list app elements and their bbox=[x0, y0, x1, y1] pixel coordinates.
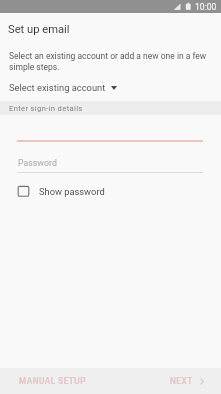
staticText: Show password bbox=[39, 186, 105, 197]
staticText: Password bbox=[18, 158, 57, 168]
button[interactable]: Password bbox=[17, 158, 203, 174]
button[interactable] bbox=[17, 124, 203, 141]
other: Signal strength bbox=[173, 3, 181, 11]
staticText: Select existing account bbox=[9, 82, 106, 93]
button[interactable]: Show password bbox=[14, 183, 105, 200]
other: Battery bbox=[185, 2, 192, 11]
staticText: MANUAL SETUP bbox=[19, 376, 86, 386]
staticText: Set up email bbox=[8, 23, 70, 36]
staticText: Select an existing account or add a new … bbox=[9, 51, 212, 72]
staticText: 10:00 bbox=[195, 2, 217, 12]
button[interactable]: Select existing account bbox=[0, 80, 221, 95]
button[interactable]: NEXT bbox=[158, 369, 221, 393]
button[interactable]: MANUAL SETUP bbox=[0, 369, 105, 393]
staticText: Enter sign-in details bbox=[9, 104, 83, 113]
staticText: NEXT bbox=[170, 376, 193, 386]
